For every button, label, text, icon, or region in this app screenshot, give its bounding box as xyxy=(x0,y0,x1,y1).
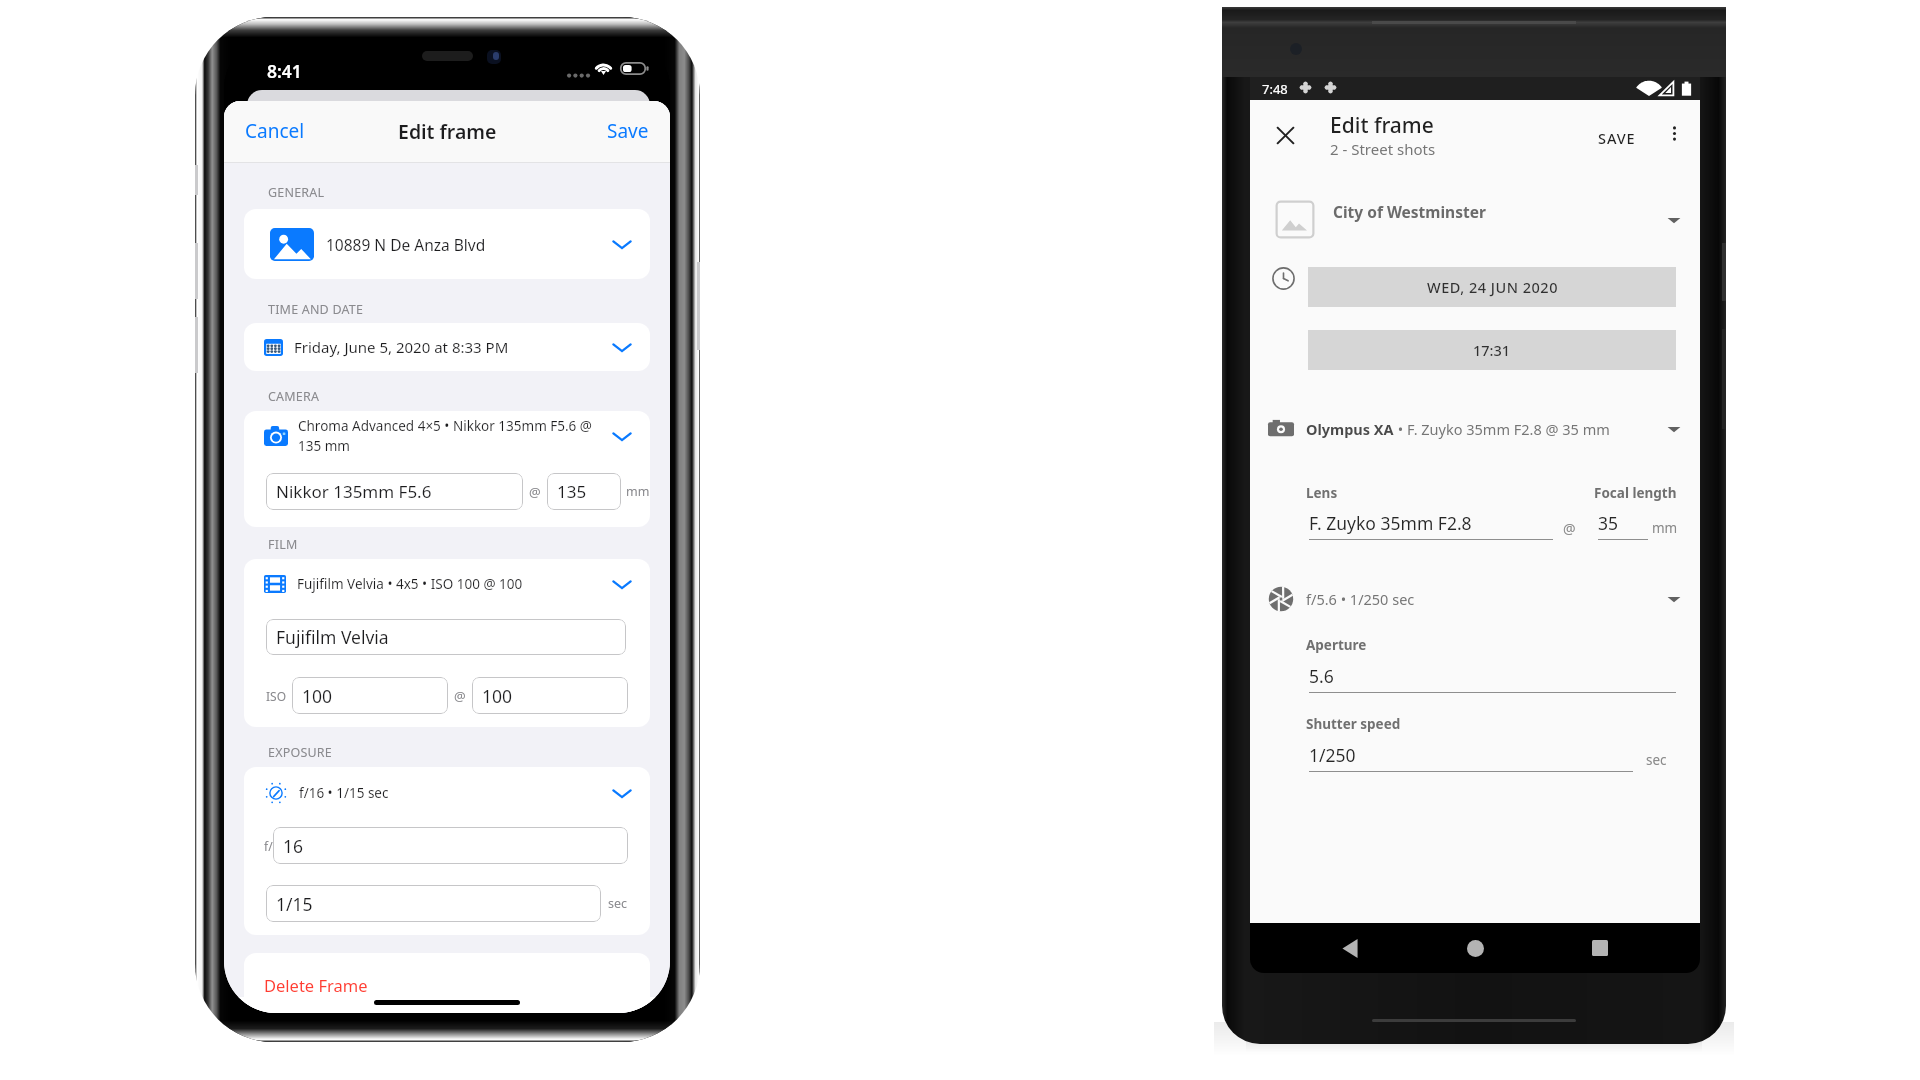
button[interactable]: Nikkor 135mm F5.6 xyxy=(266,473,523,510)
button[interactable]: Save xyxy=(607,118,649,144)
button[interactable]: Back xyxy=(1325,923,1375,973)
staticText: sec xyxy=(1646,751,1667,769)
staticText: f/5.6 • 1/250 sec xyxy=(1306,589,1666,609)
button[interactable]: 5.6 xyxy=(1309,664,1676,693)
staticText: 2 - Street shots xyxy=(1330,139,1436,159)
staticText: GENERAL xyxy=(268,184,325,201)
button[interactable]: f/5.6 • 1/250 sec xyxy=(1268,581,1682,617)
button[interactable]: Recents xyxy=(1575,923,1625,973)
staticText: mm xyxy=(626,483,650,500)
button[interactable]: 1/15 xyxy=(266,885,601,922)
staticText: sec xyxy=(608,895,628,912)
staticText: 10889 N De Anza Blvd xyxy=(326,234,610,255)
staticText: • F. Zuyko 35mm F2.8 @ 35 mm xyxy=(1394,419,1610,439)
staticText: @ xyxy=(529,483,541,501)
button[interactable]: 17:31 xyxy=(1308,330,1676,370)
staticText: Nikkor 135mm F5.6 xyxy=(276,480,432,503)
button[interactable]: F. Zuyko 35mm F2.8 xyxy=(1309,511,1553,540)
staticText: Aperture xyxy=(1306,636,1367,654)
button[interactable]: Chroma Advanced 4×5 • Nikkor 135mm F5.6 … xyxy=(264,417,634,455)
staticText: 7:48 xyxy=(1262,80,1288,98)
staticText: Shutter speed xyxy=(1306,715,1401,733)
staticText: TIME AND DATE xyxy=(268,301,364,318)
button[interactable]: Fujifilm Velvia xyxy=(266,619,626,655)
staticText: 1/250 xyxy=(1309,743,1356,767)
staticText: 5.6 xyxy=(1309,664,1334,688)
button[interactable]: Friday, June 5, 2020 at 8:33 PM xyxy=(264,323,634,371)
button[interactable]: Delete Frame xyxy=(244,953,650,1013)
staticText: City of Westminster xyxy=(1333,201,1486,222)
staticText: 8:41 xyxy=(267,59,302,83)
staticText: 1/15 xyxy=(276,892,313,916)
button[interactable]: Home xyxy=(1450,923,1500,973)
staticText: Delete Frame xyxy=(264,974,368,996)
staticText: ISO xyxy=(266,688,287,704)
staticText: SAVE xyxy=(1598,128,1636,148)
button[interactable]: WED, 24 JUN 2020 xyxy=(1308,267,1676,307)
staticText: 17:31 xyxy=(1473,340,1511,360)
staticText: 100 xyxy=(302,684,333,708)
button[interactable]: 100 xyxy=(472,677,628,714)
button[interactable]: Cancel xyxy=(245,118,305,144)
button[interactable]: Fujifilm Velvia • 4x5 • ISO 100 @ 100 xyxy=(264,568,634,600)
staticText: Edit frame xyxy=(1330,111,1434,140)
staticText: Lens xyxy=(1306,484,1338,502)
staticText: Fujifilm Velvia xyxy=(276,625,389,649)
staticText: Friday, June 5, 2020 at 8:33 PM xyxy=(294,337,610,357)
staticText: WED, 24 JUN 2020 xyxy=(1427,277,1558,297)
staticText: @ xyxy=(1563,519,1576,538)
button[interactable]: 1/250 xyxy=(1309,743,1633,772)
button[interactable]: City of Westminster xyxy=(1333,186,1682,252)
button[interactable]: 100 xyxy=(292,677,448,714)
staticText: 35 xyxy=(1598,511,1619,535)
button[interactable]: 35 xyxy=(1598,511,1648,540)
staticText: EXPOSURE xyxy=(268,744,332,761)
staticText: Cancel xyxy=(245,118,305,144)
button[interactable]: More options xyxy=(1657,116,1691,150)
staticText: f/16 • 1/15 sec xyxy=(299,784,610,802)
staticText: 135 xyxy=(557,480,587,503)
staticText: F. Zuyko 35mm F2.8 xyxy=(1309,511,1472,535)
button[interactable]: SAVE xyxy=(1590,122,1644,154)
staticText: f/ xyxy=(264,838,273,854)
staticText: @ xyxy=(454,687,466,705)
staticText: Edit frame xyxy=(398,118,497,145)
staticText: 16 xyxy=(283,834,304,858)
staticText: mm xyxy=(1652,519,1678,537)
button[interactable]: Close xyxy=(1266,116,1304,154)
button[interactable]: Olympus XA xyxy=(1268,410,1682,448)
button[interactable]: 16 xyxy=(273,827,628,864)
staticText: 100 xyxy=(482,684,513,708)
staticText: FILM xyxy=(268,536,298,553)
staticText: Save xyxy=(607,118,649,144)
staticText: CAMERA xyxy=(268,388,320,405)
button[interactable]: f/16 • 1/15 sec xyxy=(264,777,634,809)
button[interactable]: 10889 N De Anza Blvd xyxy=(270,209,634,279)
staticText: Fujifilm Velvia • 4x5 • ISO 100 @ 100 xyxy=(297,575,610,593)
staticText: Olympus XA xyxy=(1306,419,1394,439)
button[interactable]: 135 xyxy=(547,473,621,510)
staticText: Chroma Advanced 4×5 • Nikkor 135mm F5.6 … xyxy=(298,417,610,455)
staticText: Focal length xyxy=(1594,484,1677,502)
